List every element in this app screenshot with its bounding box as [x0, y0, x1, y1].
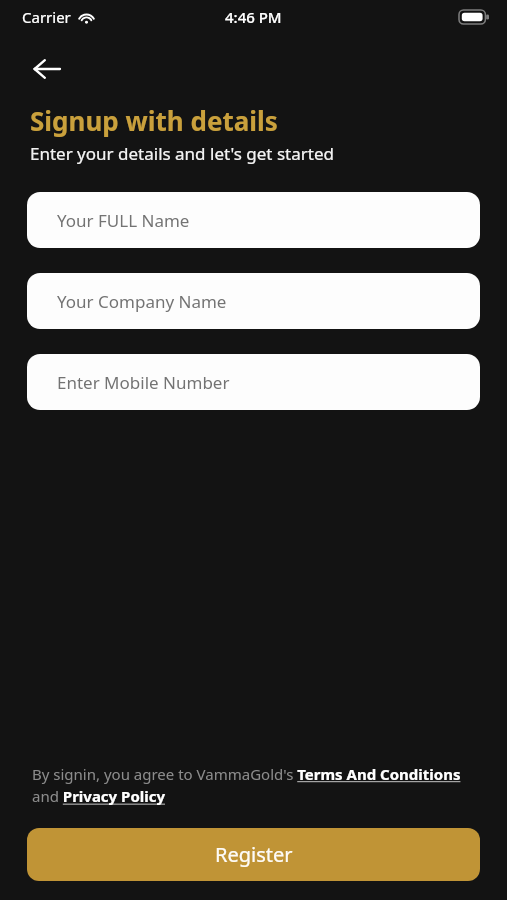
button[interactable]: By signin, you agree to VammaGold's Term… — [32, 764, 475, 807]
staticText: Your FULL Name — [57, 209, 190, 232]
staticText: Signup with details — [30, 103, 278, 138]
button[interactable]: Enter Mobile Number — [27, 354, 480, 410]
button[interactable]: Register — [27, 828, 480, 881]
staticText: Your Company Name — [57, 290, 227, 313]
staticText: Carrier — [22, 7, 71, 27]
button[interactable]: Your Company Name — [27, 273, 480, 329]
staticText: Register — [215, 841, 293, 868]
staticText: Enter your details and let's get started — [30, 142, 334, 165]
staticText: Enter Mobile Number — [57, 371, 230, 394]
button[interactable]: Back — [24, 47, 68, 91]
staticText: 4:46 PM — [225, 7, 282, 27]
button[interactable]: Your FULL Name — [27, 192, 480, 248]
staticText: By signin, you agree to VammaGold's Term… — [32, 764, 475, 807]
